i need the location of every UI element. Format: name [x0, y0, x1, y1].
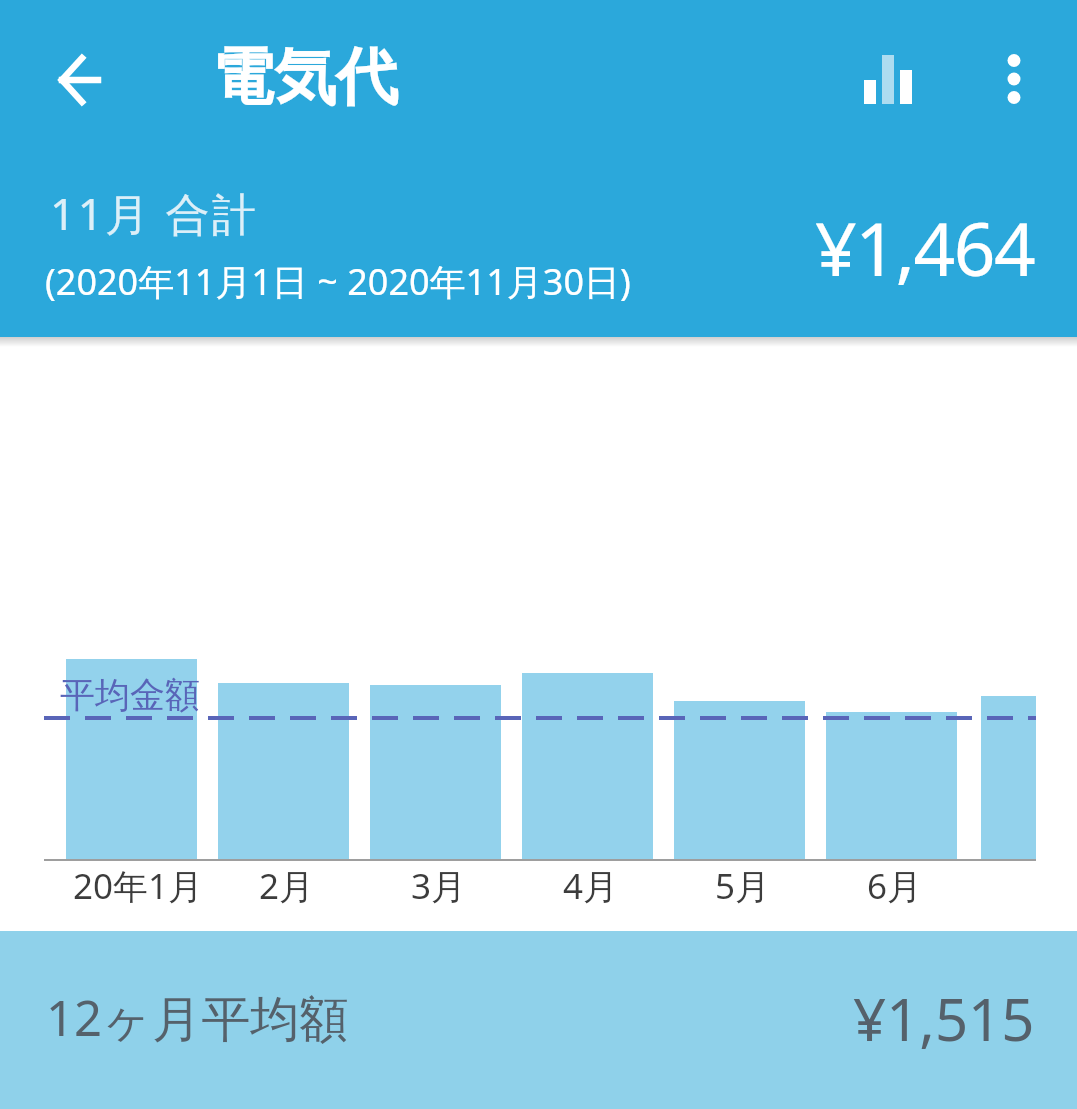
staticText: 電気代 — [212, 38, 398, 116]
button[interactable] — [849, 40, 927, 118]
staticText: 6月 — [867, 862, 923, 910]
staticText: 11月 合計 — [50, 183, 259, 243]
staticText: 2月 — [259, 862, 315, 910]
staticText: ¥1,515 — [853, 979, 1035, 1058]
button[interactable]: 12ヶ月平均額 — [0, 931, 1077, 1109]
staticText: 5月 — [715, 862, 771, 910]
button[interactable] — [975, 40, 1053, 118]
staticText: 20年1月 — [73, 862, 204, 910]
staticText: 12ヶ月平均額 — [46, 984, 349, 1051]
staticText: ¥1,464 — [815, 198, 1035, 297]
button[interactable] — [44, 44, 116, 116]
staticText: 4月 — [563, 862, 619, 910]
staticText: 平均金額 — [60, 673, 200, 717]
staticText: (2020年11月1日 ~ 2020年11月30日) — [45, 257, 631, 306]
staticText: 3月 — [411, 862, 467, 910]
